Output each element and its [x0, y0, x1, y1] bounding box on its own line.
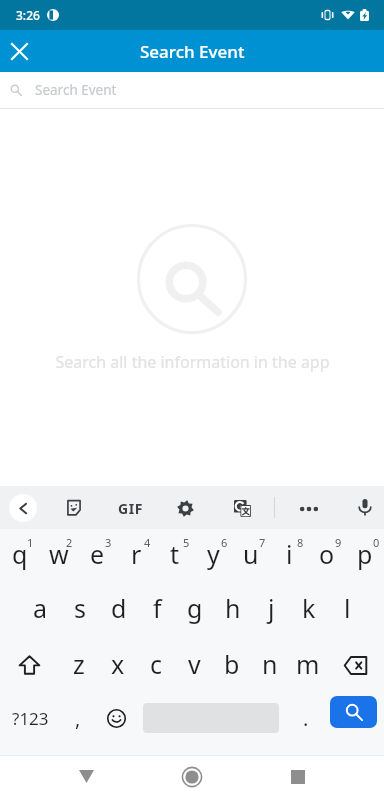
- staticText: Search all the information in the app: [55, 351, 330, 373]
- button[interactable]: Close: [1, 33, 37, 69]
- staticText: w: [49, 537, 69, 571]
- button[interactable]: Voice input: [356, 498, 374, 516]
- button[interactable]: e: [78, 529, 117, 583]
- button[interactable]: h: [214, 583, 252, 637]
- staticText: 1: [27, 535, 34, 550]
- button[interactable]: v: [175, 637, 213, 691]
- staticText: h: [225, 591, 241, 625]
- staticText: f: [153, 591, 162, 625]
- staticText: g: [187, 591, 203, 625]
- button[interactable]: .: [284, 691, 328, 745]
- staticText: b: [224, 647, 240, 681]
- button[interactable]: a: [21, 583, 60, 637]
- button[interactable]: Space: [138, 691, 284, 745]
- button[interactable]: Back: [9, 494, 37, 522]
- staticText: 6: [221, 535, 228, 550]
- button[interactable]: g: [176, 583, 214, 637]
- staticText: l: [344, 591, 351, 625]
- button[interactable]: n: [251, 637, 289, 691]
- button[interactable]: z: [59, 637, 98, 691]
- button[interactable]: i: [270, 529, 308, 583]
- button[interactable]: s: [60, 583, 99, 637]
- staticText: ,: [75, 705, 81, 732]
- staticText: r: [131, 537, 142, 571]
- button[interactable]: t: [156, 529, 194, 583]
- button[interactable]: Settings: [177, 500, 194, 517]
- staticText: j: [268, 591, 275, 625]
- button[interactable]: y: [194, 529, 232, 583]
- staticText: c: [150, 647, 163, 681]
- staticText: 9: [335, 535, 342, 550]
- staticText: k: [302, 591, 316, 625]
- staticText: 8: [297, 535, 304, 550]
- staticText: x: [111, 647, 125, 681]
- staticText: z: [73, 647, 85, 681]
- button[interactable]: q: [0, 529, 39, 583]
- staticText: u: [243, 537, 259, 571]
- button[interactable]: l: [328, 583, 366, 637]
- button[interactable]: Translate: [234, 500, 251, 517]
- button[interactable]: Search: [330, 696, 377, 728]
- button[interactable]: Emoji: [94, 691, 138, 745]
- staticText: ?123: [12, 707, 49, 730]
- staticText: 5: [183, 535, 190, 550]
- button[interactable]: GIF: [118, 499, 144, 518]
- staticText: 4: [144, 535, 151, 550]
- button[interactable]: r: [117, 529, 156, 583]
- staticText: 0: [373, 535, 380, 550]
- staticText: n: [262, 647, 278, 681]
- staticText: 7: [259, 535, 266, 550]
- button[interactable]: More options: [300, 500, 318, 518]
- staticText: .: [303, 705, 309, 732]
- button[interactable]: d: [99, 583, 138, 637]
- button[interactable]: b: [213, 637, 251, 691]
- staticText: s: [74, 591, 86, 625]
- staticText: a: [33, 591, 48, 625]
- staticText: Search Event: [35, 81, 117, 99]
- staticText: m: [296, 647, 320, 681]
- staticText: o: [319, 537, 335, 571]
- button[interactable]: ?123: [0, 691, 61, 745]
- button[interactable]: ,: [61, 691, 94, 745]
- button[interactable]: k: [290, 583, 328, 637]
- button[interactable]: f: [138, 583, 176, 637]
- staticText: d: [111, 591, 127, 625]
- button[interactable]: Stickers: [66, 500, 82, 516]
- button[interactable]: u: [232, 529, 270, 583]
- button[interactable]: o: [308, 529, 346, 583]
- staticText: t: [170, 537, 180, 571]
- button[interactable]: Recents: [274, 754, 322, 799]
- button[interactable]: j: [252, 583, 290, 637]
- staticText: i: [286, 537, 293, 571]
- staticText: v: [188, 647, 201, 681]
- staticText: p: [357, 537, 373, 571]
- button[interactable]: Shift: [0, 637, 59, 691]
- staticText: q: [12, 537, 28, 571]
- button[interactable]: p: [346, 529, 384, 583]
- staticText: 2: [66, 535, 73, 550]
- button[interactable]: m: [289, 637, 327, 691]
- staticText: y: [207, 537, 220, 571]
- button[interactable]: Back: [62, 754, 110, 799]
- button[interactable]: x: [98, 637, 137, 691]
- staticText: 3:26: [16, 7, 40, 23]
- button[interactable]: Home: [168, 754, 216, 799]
- button[interactable]: Backspace: [327, 637, 384, 691]
- staticText: Search Event: [140, 40, 245, 63]
- button[interactable]: w: [39, 529, 78, 583]
- staticText: e: [90, 537, 105, 571]
- staticText: 3: [105, 535, 112, 550]
- button[interactable]: c: [137, 637, 175, 691]
